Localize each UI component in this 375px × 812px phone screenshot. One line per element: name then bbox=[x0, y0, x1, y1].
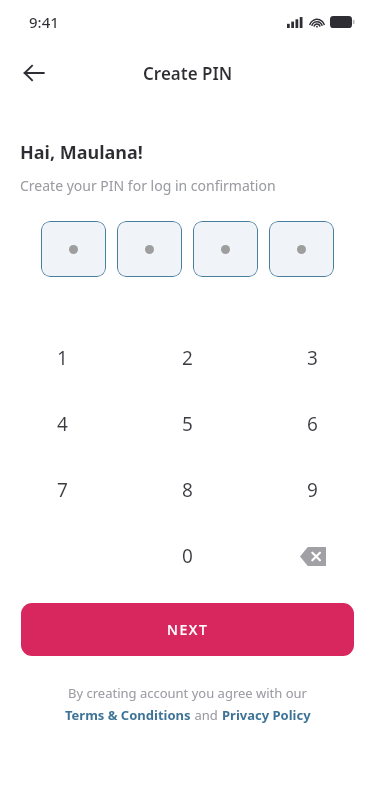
button[interactable]: 9 bbox=[250, 457, 375, 523]
staticText: Create your PIN for log in confirmation bbox=[20, 176, 276, 195]
button[interactable] bbox=[193, 221, 258, 277]
button[interactable]: Terms & Conditions bbox=[65, 706, 191, 724]
staticText: Hai, Maulana! bbox=[20, 140, 143, 165]
button[interactable] bbox=[269, 221, 334, 277]
staticText: 1 bbox=[57, 345, 68, 371]
staticText: 5 bbox=[182, 411, 193, 437]
staticText: Privacy Policy bbox=[222, 706, 311, 724]
button[interactable]: 5 bbox=[125, 391, 250, 457]
staticText: 9:41 bbox=[29, 12, 59, 32]
button[interactable]: Back bbox=[10, 49, 58, 97]
staticText: 4 bbox=[57, 411, 68, 437]
button[interactable]: 7 bbox=[0, 457, 125, 523]
button[interactable]: NEXT bbox=[21, 603, 354, 656]
staticText: 6 bbox=[307, 411, 318, 437]
staticText: 9 bbox=[307, 477, 318, 503]
staticText: 7 bbox=[57, 477, 68, 503]
button[interactable]: Privacy Policy bbox=[222, 706, 311, 724]
staticText: 8 bbox=[182, 477, 193, 503]
button[interactable]: 6 bbox=[250, 391, 375, 457]
button[interactable]: 4 bbox=[0, 391, 125, 457]
button[interactable] bbox=[117, 221, 182, 277]
staticText: NEXT bbox=[167, 620, 209, 639]
button[interactable]: 2 bbox=[125, 325, 250, 391]
staticText: Create PIN bbox=[143, 62, 233, 85]
button[interactable]: 3 bbox=[250, 325, 375, 391]
button[interactable]: 8 bbox=[125, 457, 250, 523]
button[interactable] bbox=[41, 221, 106, 277]
staticText: 0 bbox=[182, 543, 193, 569]
staticText: By creating account you agree with our bbox=[0, 684, 375, 702]
button[interactable]: 0 bbox=[125, 523, 250, 589]
staticText: 3 bbox=[307, 345, 318, 371]
button[interactable]: 1 bbox=[0, 325, 125, 391]
staticText: 2 bbox=[182, 345, 193, 371]
staticText: Terms & Conditions bbox=[65, 706, 191, 724]
button[interactable]: Backspace bbox=[250, 523, 375, 589]
staticText: and bbox=[191, 706, 222, 724]
